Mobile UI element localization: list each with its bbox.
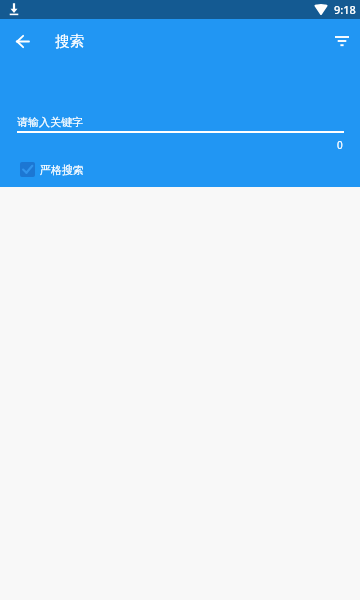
- staticText: 搜索: [55, 32, 84, 50]
- button[interactable]: 严格搜索: [20, 162, 84, 177]
- staticText: 请输入关键字: [17, 115, 83, 129]
- other: Download: [9, 3, 19, 15]
- button[interactable]: Back: [0, 19, 44, 63]
- staticText: 严格搜索: [40, 163, 84, 177]
- staticText: 9:18: [334, 2, 356, 17]
- button[interactable]: Filter: [316, 19, 360, 63]
- button[interactable]: 请输入关键字: [17, 110, 344, 133]
- staticText: 0: [337, 138, 343, 152]
